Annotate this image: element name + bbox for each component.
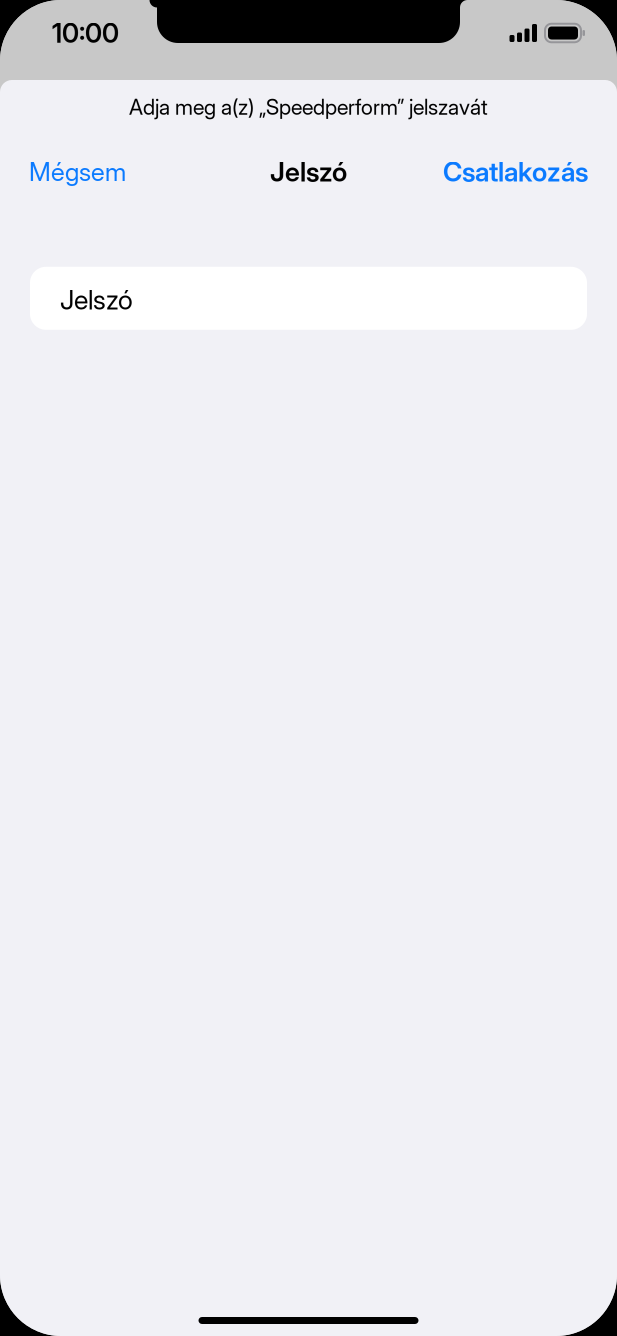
staticText: Adja meg a(z) „Speedperform” jelszavát [129,94,488,120]
button[interactable]: Csatlakozás [443,156,588,188]
button[interactable]: Jelszó [30,267,587,330]
staticText: Jelszó [270,156,347,188]
staticText: Mégsem [29,156,126,187]
button[interactable]: Mégsem [29,156,126,187]
staticText: 10:00 [52,17,119,49]
staticText: Jelszó [60,284,133,316]
staticText: Csatlakozás [443,156,588,188]
